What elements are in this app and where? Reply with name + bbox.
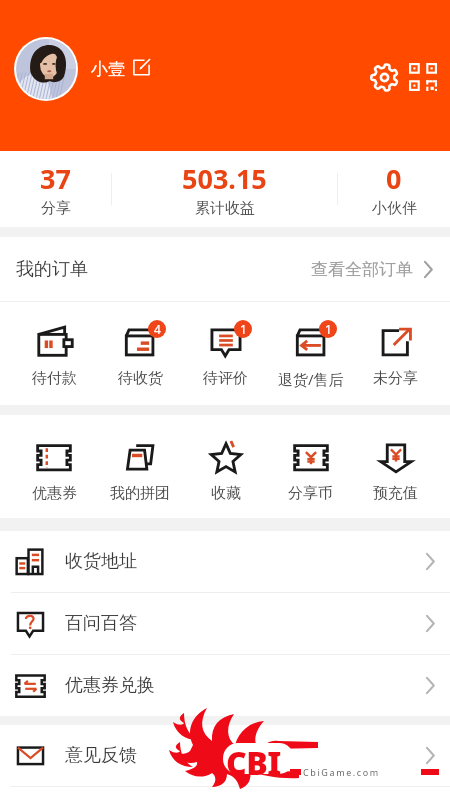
staticText: 分享 — [41, 199, 71, 218]
staticText: 1 — [325, 321, 332, 337]
staticText: 分享币 — [288, 484, 333, 503]
staticText: CbiGame.com — [303, 766, 380, 778]
staticText: 0 — [386, 160, 402, 197]
button[interactable]: 37 — [0, 160, 111, 218]
staticText: CBI — [226, 741, 281, 785]
staticText: 503.15 — [182, 160, 267, 197]
staticText: 意见反馈 — [65, 744, 137, 767]
button[interactable]: 未分享 — [353, 323, 438, 388]
button[interactable]: 503.15 — [112, 160, 337, 218]
staticText: 4 — [154, 321, 161, 337]
button[interactable]: 收藏 — [183, 438, 268, 503]
staticText: 累计收益 — [195, 199, 255, 218]
staticText: 收货地址 — [65, 550, 137, 573]
button[interactable]: 优惠券 — [11, 438, 97, 503]
button[interactable]: 1 — [268, 323, 353, 389]
button[interactable]: 我的订单 — [0, 237, 450, 301]
staticText: 百问百答 — [65, 612, 137, 635]
staticText: 未分享 — [373, 369, 418, 388]
button[interactable]: Edit nickname — [132, 58, 151, 77]
staticText: 我的订单 — [16, 258, 88, 281]
button[interactable]: 优惠券兑换 — [0, 655, 450, 716]
staticText: 查看全部订单 — [311, 259, 413, 280]
staticText: 优惠券兑换 — [65, 674, 155, 697]
staticText: 小壹 — [91, 59, 125, 80]
staticText: 小伙伴 — [372, 199, 417, 218]
button[interactable]: 收货地址 — [0, 531, 450, 592]
staticText: 我的拼团 — [110, 484, 170, 503]
button[interactable]: 我的拼团 — [97, 438, 183, 503]
button[interactable]: 4 — [97, 323, 183, 388]
button[interactable]: Profile avatar — [14, 37, 78, 101]
staticText: 待收货 — [118, 369, 163, 388]
staticText: 待付款 — [32, 369, 77, 388]
button[interactable]: 1 — [183, 323, 268, 388]
button[interactable]: 待付款 — [11, 323, 97, 388]
staticText: 待评价 — [203, 369, 248, 388]
button[interactable]: 0 — [338, 160, 450, 218]
button[interactable]: 意见反馈 — [0, 725, 450, 786]
button[interactable]: Scan QR code — [409, 63, 437, 91]
staticText: 收藏 — [211, 484, 241, 503]
button[interactable]: 分享币 — [268, 438, 353, 503]
staticText: 优惠券 — [32, 484, 77, 503]
button[interactable]: 预充值 — [353, 438, 438, 503]
staticText: 37 — [40, 160, 71, 197]
button[interactable]: 百问百答 — [0, 593, 450, 654]
staticText: 预充值 — [373, 484, 418, 503]
staticText: 1 — [240, 321, 247, 337]
button[interactable]: Settings — [370, 63, 399, 92]
staticText: 退货/售后 — [278, 369, 344, 389]
